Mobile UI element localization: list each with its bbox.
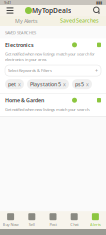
staticText: pet: [8, 81, 16, 88]
staticText: Get notified when new listings match you…: [5, 107, 90, 112]
staticText: +: [95, 67, 98, 74]
staticText: Playstation 5: [30, 81, 61, 88]
staticText: Post: [49, 222, 56, 227]
staticText: ▮▮▮: [96, 0, 102, 5]
button[interactable]: ps5: [72, 79, 92, 89]
button[interactable]: Chat: [64, 213, 85, 227]
staticText: x: [63, 81, 66, 88]
staticText: My Alerts: [15, 17, 38, 25]
button[interactable]: Saved Searches: [53, 16, 106, 26]
staticText: SAVED SEARCHES: [5, 30, 36, 35]
button[interactable]: Sell: [21, 213, 42, 227]
button[interactable]: Search: [92, 5, 102, 15]
button[interactable]: My Alerts: [0, 16, 53, 26]
staticText: Chat: [70, 222, 78, 227]
staticText: x: [86, 81, 89, 88]
button[interactable]: Playstation 5: [27, 79, 69, 89]
button[interactable]: Menu: [4, 4, 16, 16]
staticText: Saved Searches: [60, 17, 99, 24]
staticText: Electronics: [5, 41, 34, 48]
staticText: Get notified when new listings match you…: [5, 51, 95, 62]
button[interactable]: pet: [5, 79, 24, 89]
button[interactable]: Buy Now: [0, 213, 21, 227]
staticText: x: [18, 81, 21, 88]
staticText: ps5: [75, 81, 84, 88]
staticText: MyTopDeals: [32, 6, 71, 15]
staticText: 9:41: [4, 0, 11, 5]
staticText: Sell: [29, 222, 35, 227]
staticText: Alerts: [90, 222, 101, 227]
staticText: Select Keywords & Filters: [8, 68, 52, 73]
staticText: Home & Garden: [5, 97, 44, 104]
button[interactable]: Post: [42, 213, 64, 227]
staticText: Buy Now: [3, 222, 19, 227]
button[interactable]: Alerts: [85, 213, 106, 227]
